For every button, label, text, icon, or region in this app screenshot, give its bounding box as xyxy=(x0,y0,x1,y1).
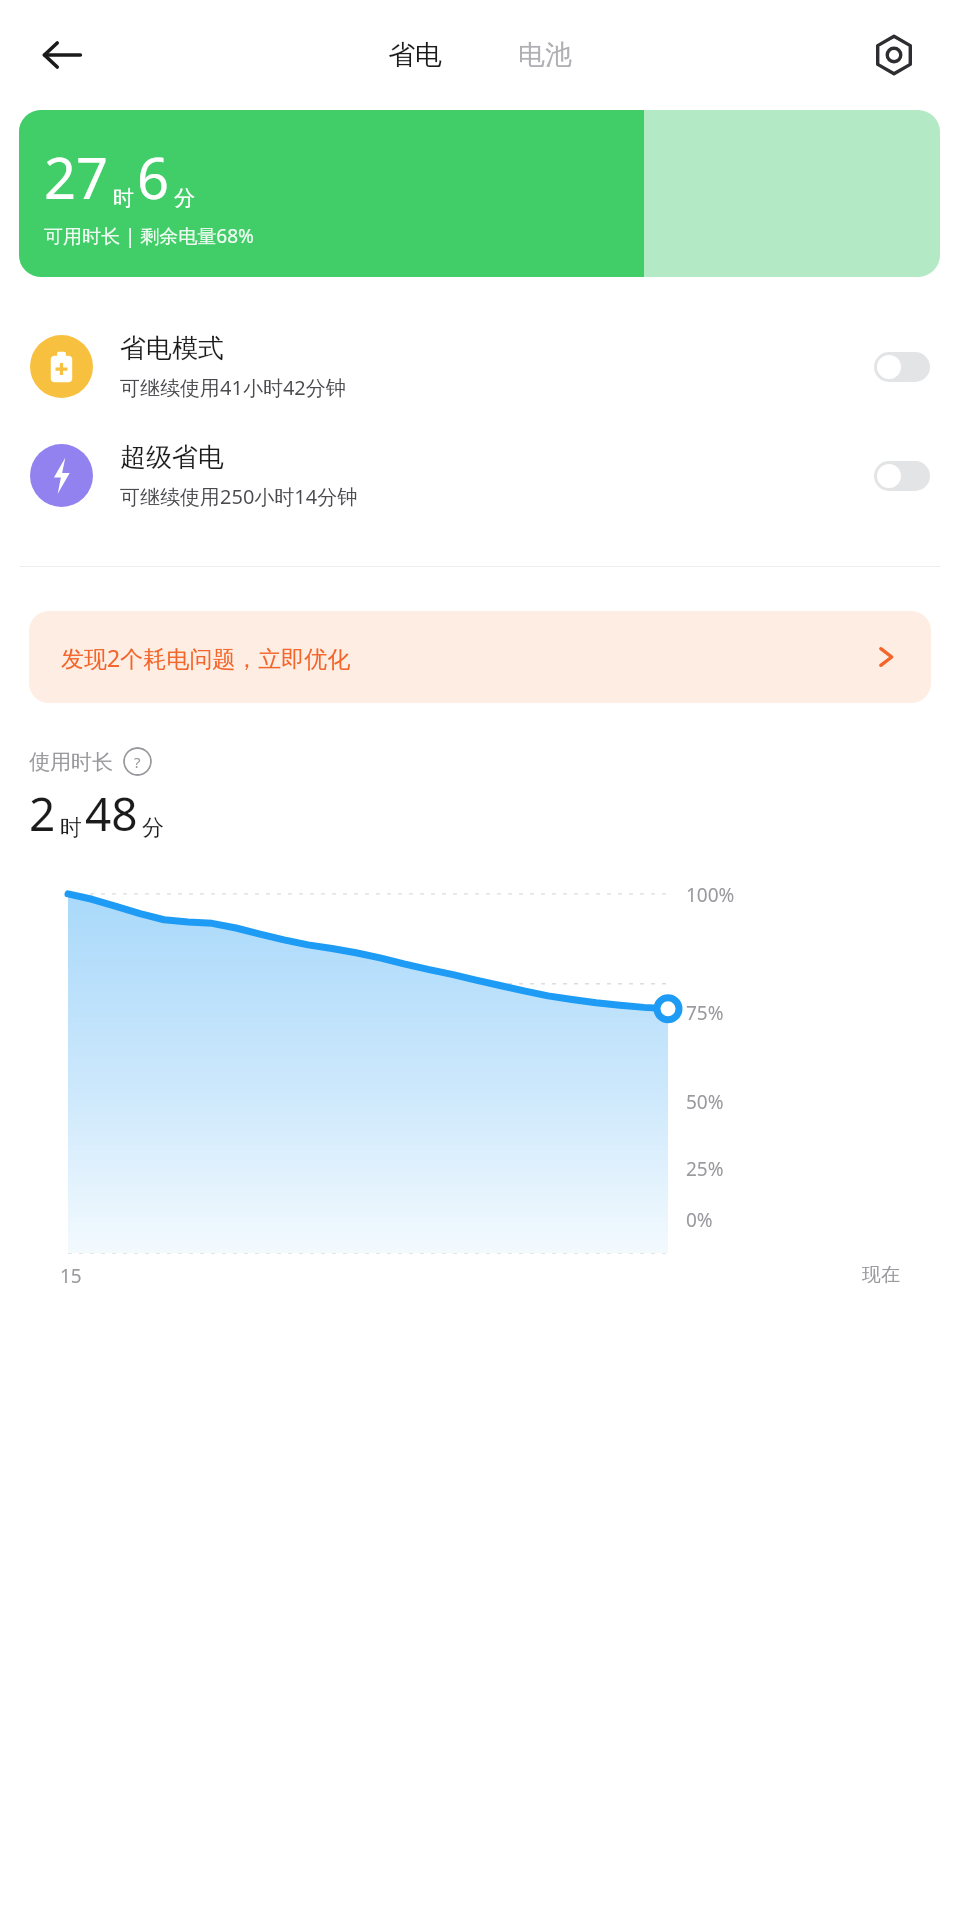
staticText: 可继续使用41小时42分钟 xyxy=(120,374,346,401)
staticText: 48 xyxy=(85,782,138,845)
staticText: 时 xyxy=(113,185,134,211)
staticText: 分 xyxy=(142,814,164,842)
button[interactable]: Back xyxy=(26,19,98,91)
button[interactable]: 发现2个耗电问题，立即优化 xyxy=(29,611,931,703)
button[interactable]: Help xyxy=(123,747,152,776)
button[interactable]: Settings xyxy=(858,19,930,91)
button[interactable]: 超级省电 xyxy=(0,433,960,518)
staticText: 现在 xyxy=(862,1263,900,1287)
staticText: 2 xyxy=(29,782,56,845)
staticText: 发现2个耗电问题，立即优化 xyxy=(61,642,351,673)
staticText: 100% xyxy=(686,882,735,908)
staticText: 50% xyxy=(686,1089,724,1115)
button[interactable]: 省电 xyxy=(378,32,452,78)
button[interactable]: 电池 xyxy=(508,32,582,78)
button[interactable]: 省电模式 xyxy=(0,324,960,409)
staticText: 分 xyxy=(174,185,195,211)
staticText: 省电模式 xyxy=(120,332,224,365)
staticText: 时 xyxy=(60,814,82,842)
staticText: 15 xyxy=(60,1263,82,1289)
staticText: 6 xyxy=(137,139,170,215)
button[interactable]: 27 xyxy=(19,110,940,277)
staticText: 0% xyxy=(686,1207,713,1233)
staticText: 25% xyxy=(686,1156,724,1182)
staticText: 27 xyxy=(44,139,109,215)
staticText: ? xyxy=(134,752,141,772)
button[interactable]: Toggle 超级省电 xyxy=(874,461,930,491)
staticText: 省电 xyxy=(388,38,442,72)
staticText: 超级省电 xyxy=(120,441,224,474)
staticText: 可用时长 | 剩余电量68% xyxy=(44,223,254,249)
staticText: 使用时长 xyxy=(29,749,113,775)
staticText: 可继续使用250小时14分钟 xyxy=(120,483,358,510)
button[interactable]: Toggle 省电模式 xyxy=(874,352,930,382)
staticText: 电池 xyxy=(518,38,572,72)
staticText: 75% xyxy=(686,1000,724,1026)
